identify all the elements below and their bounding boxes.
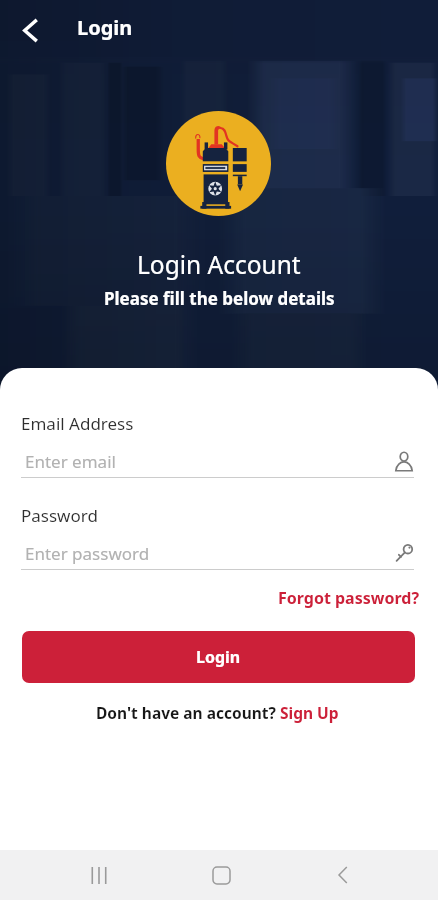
staticText: Enter password [25, 542, 150, 565]
staticText: Forgot password? [278, 587, 420, 609]
staticText: Login Account [137, 248, 301, 281]
button[interactable]: Sign Up [280, 702, 339, 723]
staticText: Please fill the below details [104, 287, 335, 310]
staticText: Login [196, 646, 241, 668]
button[interactable]: Login [22, 631, 415, 683]
button[interactable]: Enter password [21, 542, 394, 565]
staticText: Enter email [25, 450, 116, 473]
button[interactable]: Back [313, 850, 373, 900]
button[interactable]: Back [0, 0, 58, 54]
staticText: Login [77, 14, 133, 41]
button[interactable]: Forgot password? [278, 584, 420, 612]
button[interactable]: Recents [69, 850, 129, 900]
staticText: Don't have an account? [96, 702, 280, 723]
staticText: Sign Up [280, 702, 339, 723]
staticText: Email Address [21, 412, 134, 435]
staticText: Password [21, 504, 98, 527]
button[interactable]: Home [191, 850, 251, 900]
button[interactable]: Enter email [21, 450, 394, 473]
